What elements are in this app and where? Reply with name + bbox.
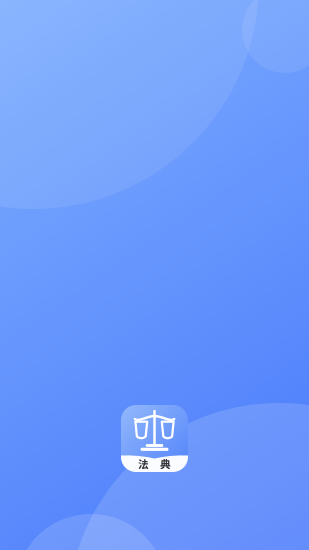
staticText: 法 典 <box>138 456 171 471</box>
